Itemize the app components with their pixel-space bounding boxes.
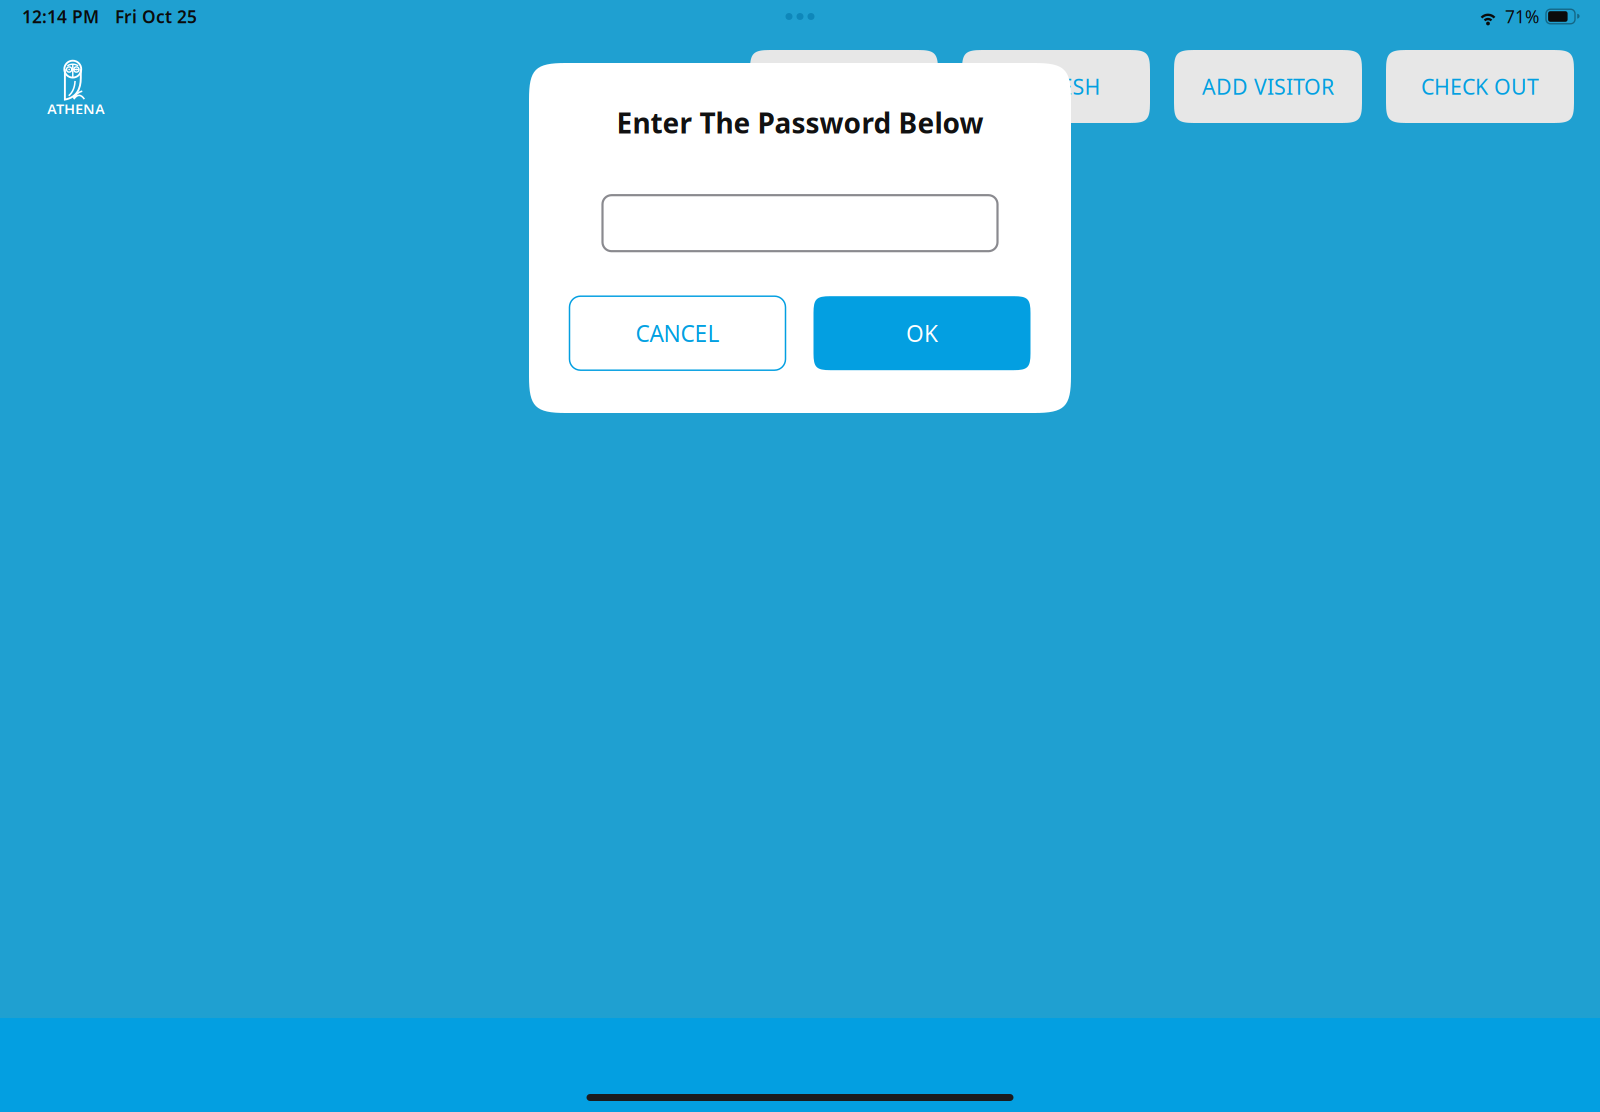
staticText: REFRESH xyxy=(1011,72,1100,101)
button[interactable]: CHECK OUT xyxy=(1386,50,1574,123)
staticText: Enter The Password Below xyxy=(616,104,983,141)
button[interactable]: CANCEL xyxy=(569,296,785,370)
button[interactable]: Password xyxy=(602,195,997,251)
staticText: Fri Oct 25 xyxy=(115,5,197,28)
button[interactable]: ADD VISITOR xyxy=(1174,50,1362,123)
staticText: ADD VISITOR xyxy=(1202,72,1334,101)
button[interactable]: CHECK IN xyxy=(750,50,938,123)
staticText: ATHENA xyxy=(47,99,105,118)
button[interactable]: OK xyxy=(813,296,1030,370)
button[interactable]: Athena home xyxy=(40,59,112,121)
staticText: CHECK OUT xyxy=(1421,72,1539,101)
staticText: OK xyxy=(906,318,938,348)
staticText: 12:14 PM xyxy=(22,5,99,28)
staticText: 71% xyxy=(1505,5,1539,28)
staticText: CANCEL xyxy=(635,318,719,348)
button[interactable]: REFRESH xyxy=(962,50,1150,123)
